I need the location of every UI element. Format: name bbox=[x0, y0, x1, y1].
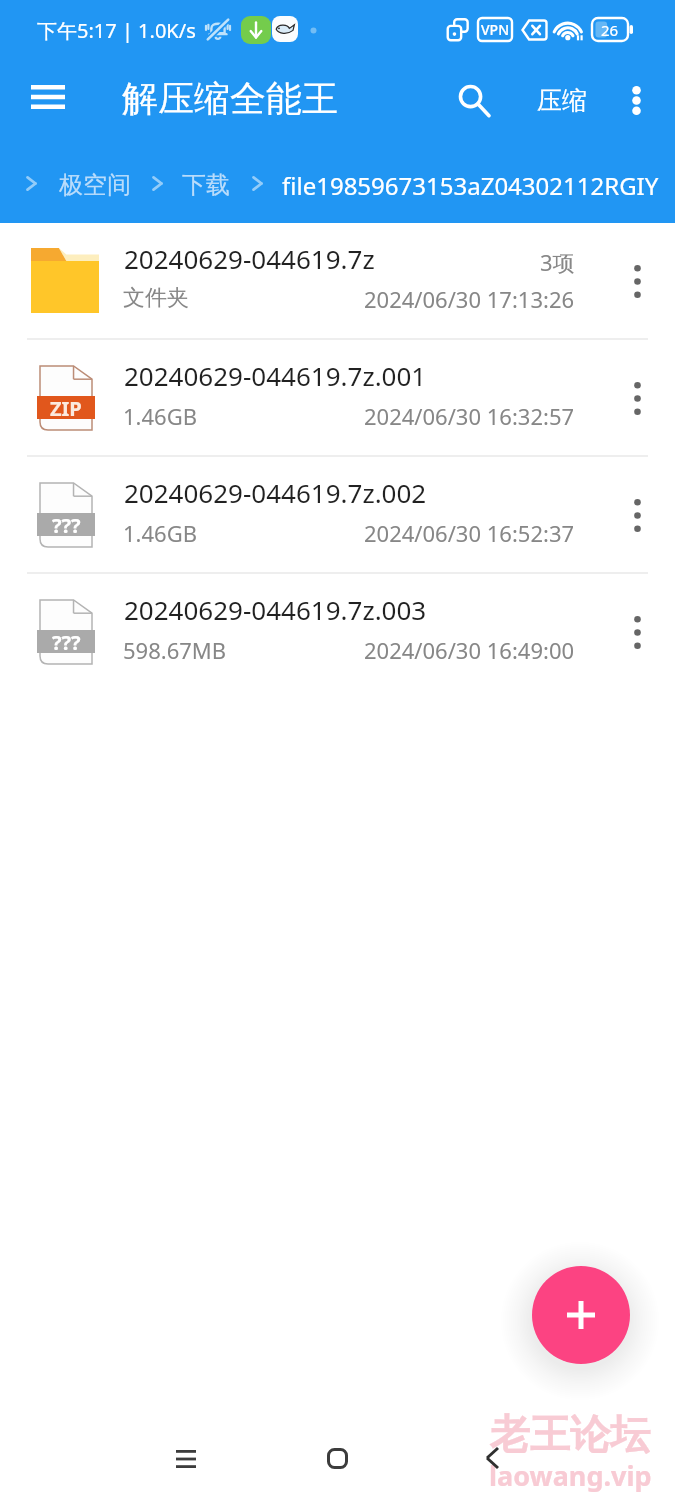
button[interactable]: Menu bbox=[16, 65, 80, 129]
staticText: 26 bbox=[601, 20, 619, 40]
staticText: 598.67MB bbox=[123, 635, 227, 665]
button[interactable]: More bbox=[609, 574, 665, 691]
staticText: 解压缩全能王 bbox=[122, 76, 338, 121]
button[interactable]: ??? bbox=[0, 574, 675, 691]
button[interactable]: Search bbox=[442, 68, 506, 132]
button[interactable]: ZIP bbox=[0, 340, 675, 457]
button[interactable]: 极空间 bbox=[59, 170, 131, 200]
button[interactable]: Recents bbox=[156, 1429, 216, 1489]
button[interactable]: More bbox=[609, 223, 665, 340]
button[interactable]: 压缩 bbox=[522, 70, 602, 130]
button[interactable]: Back bbox=[462, 1428, 522, 1488]
staticText: 2024/06/30 16:32:57 bbox=[364, 401, 575, 431]
button[interactable]: Add bbox=[532, 1266, 630, 1364]
staticText: 20240629-044619.7z bbox=[124, 241, 375, 276]
staticText: 20240629-044619.7z.002 bbox=[124, 475, 427, 510]
button[interactable]: 下载 bbox=[182, 170, 230, 200]
staticText: 1.46GB bbox=[123, 401, 197, 431]
button[interactable]: ??? bbox=[0, 457, 675, 574]
button[interactable]: file19859673153aZ04302112RGIY bbox=[282, 169, 659, 202]
staticText: ??? bbox=[52, 629, 81, 652]
button[interactable]: More options bbox=[606, 70, 666, 130]
staticText: 20240629-044619.7z.001 bbox=[124, 358, 427, 393]
staticText: 2024/06/30 16:49:00 bbox=[364, 635, 575, 665]
staticText: ??? bbox=[52, 512, 81, 535]
button[interactable]: More bbox=[609, 457, 665, 574]
staticText: 老王论坛 bbox=[490, 1409, 650, 1459]
staticText: 20240629-044619.7z.003 bbox=[124, 592, 427, 627]
staticText: 2024/06/30 16:52:37 bbox=[364, 518, 575, 548]
staticText: 文件夹 bbox=[123, 284, 189, 312]
button[interactable]: Home bbox=[307, 1428, 367, 1488]
staticText: 3项 bbox=[540, 247, 575, 277]
staticText: laowang.vip bbox=[489, 1457, 652, 1494]
staticText: ZIP bbox=[50, 395, 82, 418]
staticText: 下午5:17 | 1.0K/s bbox=[37, 17, 196, 44]
staticText: 压缩 bbox=[537, 85, 587, 116]
button[interactable]: 20240629-044619.7z bbox=[0, 223, 675, 340]
staticText: 1.46GB bbox=[123, 518, 197, 548]
staticText: 2024/06/30 17:13:26 bbox=[364, 284, 575, 314]
button[interactable]: More bbox=[609, 340, 665, 457]
staticText: VPN bbox=[481, 20, 510, 39]
